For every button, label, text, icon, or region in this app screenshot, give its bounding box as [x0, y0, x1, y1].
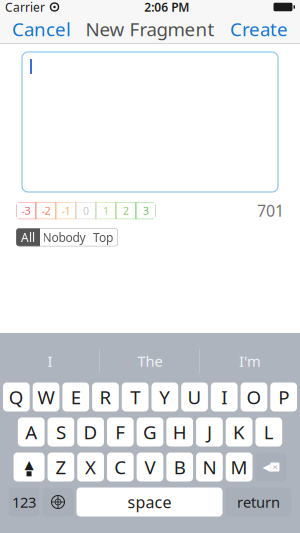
staticText: A — [25, 420, 37, 444]
staticText: return — [237, 492, 280, 512]
button[interactable]: I'm — [200, 344, 300, 377]
button[interactable]: L — [255, 417, 282, 446]
button[interactable]: Create — [222, 11, 296, 47]
staticText: 2:06 PM — [144, 0, 189, 15]
button[interactable]: U — [181, 382, 208, 411]
button[interactable]: Cancel — [4, 11, 79, 47]
button[interactable]: X — [77, 452, 104, 481]
button[interactable]: 3 — [136, 202, 156, 219]
button[interactable]: 2 — [116, 202, 136, 219]
staticText: C — [114, 455, 126, 479]
button[interactable]: E — [62, 382, 89, 411]
button[interactable]: Q — [3, 382, 30, 411]
staticText: -1 — [61, 203, 70, 218]
button[interactable]: Top — [88, 228, 118, 246]
staticText: 2 — [123, 203, 129, 218]
staticText: D — [84, 420, 98, 444]
button[interactable]: V — [137, 452, 163, 481]
staticText: T — [130, 385, 140, 409]
button[interactable]: N — [196, 452, 223, 481]
staticText: I — [221, 385, 227, 409]
button[interactable]: R — [92, 382, 119, 411]
button[interactable]: return — [225, 487, 291, 516]
staticText: Carrier — [5, 0, 45, 15]
staticText: ◀ — [262, 461, 270, 473]
staticText: I — [47, 351, 52, 371]
button[interactable]: S — [48, 417, 74, 446]
button[interactable]: Z — [48, 452, 74, 481]
button[interactable]: Next keyboard — [42, 487, 73, 516]
staticText: Y — [159, 385, 170, 409]
button[interactable]: -1 — [56, 202, 76, 219]
button[interactable]: space — [76, 487, 222, 516]
staticText: N — [202, 455, 216, 479]
staticText: × — [272, 461, 277, 473]
button[interactable]: All — [16, 228, 40, 246]
button[interactable]: I — [211, 382, 238, 411]
button[interactable]: B — [166, 452, 193, 481]
staticText: 1 — [103, 203, 109, 218]
staticText: R — [99, 385, 111, 409]
button[interactable]: W — [33, 382, 59, 411]
button[interactable]: P — [270, 382, 297, 411]
button[interactable]: H — [166, 417, 193, 446]
button[interactable]: 0 — [76, 202, 96, 219]
staticText: B — [174, 455, 186, 479]
staticText: W — [38, 385, 55, 409]
staticText: J — [207, 420, 212, 444]
button[interactable]: D — [77, 417, 104, 446]
staticText: New Fragment — [85, 17, 214, 41]
staticText: ▲ — [25, 458, 34, 471]
staticText: H — [173, 420, 187, 444]
staticText: V — [144, 455, 155, 479]
staticText: P — [278, 385, 289, 409]
button[interactable]: M — [226, 452, 252, 481]
button[interactable]: The — [100, 344, 200, 377]
staticText: Q — [9, 385, 24, 409]
staticText: U — [188, 385, 202, 409]
button[interactable]: 123 — [8, 487, 39, 516]
button[interactable]: T — [122, 382, 148, 411]
staticText: The — [137, 351, 162, 371]
staticText: 701 — [257, 200, 284, 221]
button[interactable]: Shift — [14, 452, 45, 481]
staticText: -2 — [41, 203, 50, 218]
button[interactable]: Nobody — [40, 228, 88, 246]
button[interactable]: O — [241, 382, 267, 411]
staticText: M — [231, 455, 248, 479]
button[interactable]: -2 — [36, 202, 56, 219]
button[interactable]: -3 — [16, 202, 36, 219]
button[interactable]: G — [137, 417, 163, 446]
staticText: 123 — [12, 492, 36, 512]
staticText: S — [56, 420, 66, 444]
staticText: 0 — [83, 203, 89, 218]
staticText: space — [127, 491, 171, 513]
staticText: I'm — [239, 351, 261, 371]
staticText: 3 — [143, 203, 149, 218]
button[interactable]: Delete — [255, 452, 286, 481]
staticText: F — [115, 420, 125, 444]
staticText: L — [264, 420, 274, 444]
staticText: All — [21, 229, 35, 245]
staticText: Nobody — [42, 229, 85, 245]
staticText: K — [233, 420, 245, 444]
button[interactable]: F — [107, 417, 134, 446]
button[interactable]: I — [0, 344, 100, 377]
staticText: Cancel — [12, 17, 71, 41]
staticText: X — [85, 455, 96, 479]
staticText: O — [246, 385, 261, 409]
staticText: E — [71, 385, 81, 409]
staticText: G — [143, 420, 157, 444]
staticText: Create — [230, 17, 288, 41]
staticText: -3 — [21, 203, 30, 218]
button[interactable]: C — [107, 452, 134, 481]
staticText: Top — [93, 229, 113, 245]
button[interactable]: Y — [151, 382, 178, 411]
button[interactable]: A — [18, 417, 45, 446]
button[interactable]: J — [196, 417, 223, 446]
staticText: Z — [55, 455, 66, 479]
button[interactable]: 1 — [96, 202, 116, 219]
button[interactable]: K — [226, 417, 252, 446]
